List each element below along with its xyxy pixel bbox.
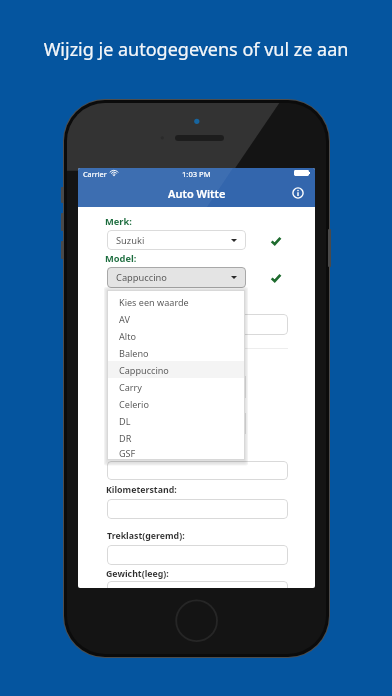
staticText: Suzuki xyxy=(116,234,145,247)
staticText: Kies een waarde xyxy=(119,296,189,308)
staticText: Treklast(geremd): xyxy=(107,530,185,542)
button[interactable]: Cappuccino xyxy=(107,361,245,378)
staticText: Gewicht(leeg): xyxy=(106,568,169,580)
staticText: Alto xyxy=(119,330,136,342)
button[interactable]: Kies een waarde xyxy=(107,293,245,310)
staticText: Carry xyxy=(119,381,142,393)
staticText: AV xyxy=(119,313,130,325)
button[interactable]: DR xyxy=(107,429,245,446)
staticText: Cappuccino xyxy=(119,364,169,376)
button[interactable]: AV xyxy=(107,310,245,327)
staticText: DR xyxy=(119,432,132,444)
staticText: Merk: xyxy=(105,215,132,228)
staticText: Baleno xyxy=(119,347,149,359)
staticText: DL xyxy=(119,415,131,427)
button[interactable]: Baleno xyxy=(107,344,245,361)
button[interactable] xyxy=(107,545,288,565)
button[interactable] xyxy=(107,461,288,480)
button[interactable] xyxy=(107,499,288,519)
button[interactable]: Carry xyxy=(107,378,245,395)
button[interactable]: GSF xyxy=(107,446,245,460)
staticText: Wijzig je autogegevens of vul ze aan xyxy=(0,37,392,62)
button[interactable]: DL xyxy=(107,412,245,429)
staticText: Cappuccino xyxy=(116,271,167,284)
staticText: Model: xyxy=(105,252,137,265)
button[interactable]: Suzuki xyxy=(107,230,246,250)
staticText: GSF xyxy=(119,447,136,459)
staticText: 1:03 PM xyxy=(182,169,211,179)
button[interactable]: Alto xyxy=(107,327,245,344)
staticText: Auto Witte xyxy=(168,186,226,201)
button[interactable]: Celerio xyxy=(107,395,245,412)
staticText: Carrier xyxy=(83,169,107,179)
staticText: Celerio xyxy=(119,398,149,410)
staticText: Kilometerstand: xyxy=(106,484,177,496)
button[interactable]: Info xyxy=(292,187,304,199)
button[interactable] xyxy=(107,581,288,588)
button[interactable] xyxy=(107,314,288,335)
button[interactable]: Cappuccino xyxy=(107,267,246,288)
